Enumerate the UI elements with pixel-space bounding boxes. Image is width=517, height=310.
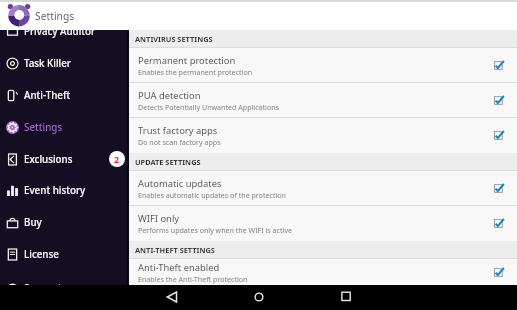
staticText: ANTIVIRUS SETTINGS: [135, 34, 213, 44]
staticText: Trust factory apps: [138, 124, 218, 137]
staticText: License: [24, 248, 59, 261]
staticText: Enables the Anti-Theft protection: [138, 274, 248, 284]
staticText: Do not scan factory apps: [138, 137, 221, 147]
button[interactable]: License: [0, 238, 129, 270]
button[interactable]: Home: [249, 287, 269, 307]
staticText: WIFI only: [138, 212, 180, 225]
staticText: Permanent protection: [138, 54, 236, 67]
staticText: Enables automatic updates of the protect…: [138, 190, 286, 200]
staticText: Buy: [24, 216, 42, 229]
button[interactable]: Automatic updates: [129, 171, 517, 206]
button[interactable]: Support: [0, 272, 129, 285]
button[interactable]: Task Killer: [0, 47, 129, 79]
button[interactable]: Back: [162, 287, 182, 307]
staticText: Privacy Auditor: [24, 30, 96, 38]
staticText: Performs updates only when the WIFI is a…: [138, 225, 292, 235]
button[interactable]: Privacy Auditor: [0, 30, 129, 47]
staticText: Support: [24, 282, 62, 285]
staticText: UPDATE SETTINGS: [135, 157, 201, 167]
staticText: Automatic updates: [138, 177, 222, 190]
button[interactable]: Exclusions: [0, 143, 129, 175]
button[interactable]: Buy: [0, 206, 129, 238]
staticText: Anti-Theft enabled: [138, 261, 220, 274]
staticText: Enables the permanent protection: [138, 67, 253, 77]
staticText: 2: [114, 153, 120, 165]
staticText: PUA detection: [138, 89, 201, 102]
button[interactable]: Settings: [0, 111, 129, 143]
button[interactable]: PUA detection: [129, 83, 517, 118]
button[interactable]: Permanent protection: [129, 48, 517, 83]
button[interactable]: Recent apps: [336, 287, 356, 307]
button[interactable]: Anti-Theft enabled: [129, 259, 517, 285]
button[interactable]: Event history: [0, 174, 129, 206]
button[interactable]: WIFI only: [129, 206, 517, 241]
staticText: Anti-Theft: [24, 89, 71, 102]
staticText: ANTI-THEFT SETTINGS: [135, 245, 215, 255]
staticText: Detects Potentially Unwanted Application…: [138, 102, 280, 112]
staticText: Settings: [24, 121, 63, 134]
staticText: Event history: [24, 184, 86, 197]
button[interactable]: Trust factory apps: [129, 118, 517, 153]
staticText: Task Killer: [24, 57, 72, 70]
staticText: Exclusions: [24, 153, 73, 166]
button[interactable]: Anti-Theft: [0, 79, 129, 111]
staticText: Settings: [35, 9, 75, 23]
